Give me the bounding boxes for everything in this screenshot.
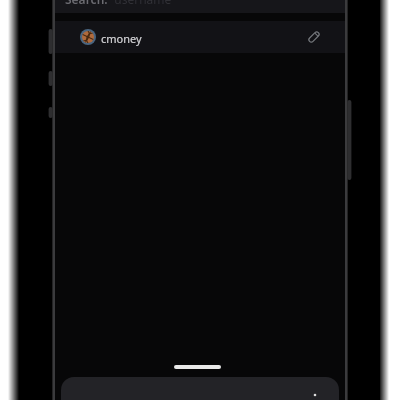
button[interactable]: Search: (55, 0, 345, 13)
button[interactable] (61, 377, 339, 400)
staticText: cmoney (101, 31, 142, 46)
button[interactable] (304, 27, 324, 47)
staticText: Search: (65, 0, 108, 4)
button[interactable]: cmoney (55, 21, 345, 53)
staticText: username (108, 0, 172, 4)
